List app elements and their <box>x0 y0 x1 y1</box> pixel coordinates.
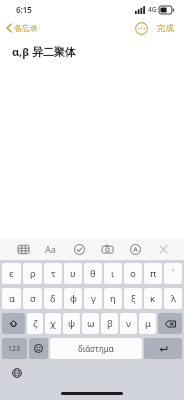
staticText: Aa <box>45 243 56 255</box>
button[interactable]: Close <box>154 240 172 258</box>
button[interactable]: χ <box>45 313 61 334</box>
staticText: ε <box>9 267 14 280</box>
staticText: 123 <box>8 344 21 354</box>
button[interactable]: Table <box>14 240 32 258</box>
button[interactable]: ρ <box>23 263 42 284</box>
staticText: α <box>9 292 15 305</box>
staticText: τ <box>51 267 56 280</box>
button[interactable]: Shift <box>2 313 25 334</box>
button[interactable]: α <box>2 288 21 309</box>
button[interactable]: ζ <box>27 313 43 334</box>
staticText: φ <box>70 292 77 305</box>
staticText: υ <box>70 267 76 280</box>
button[interactable]: Markup <box>126 240 144 258</box>
button[interactable]: ω <box>82 313 99 334</box>
staticText: 完成 <box>157 23 174 34</box>
staticText: 4G <box>148 5 157 14</box>
staticText: ξ <box>131 292 136 305</box>
button[interactable]: ν <box>120 313 137 334</box>
staticText: δ <box>50 292 56 305</box>
button[interactable]: Aa <box>41 239 60 259</box>
button[interactable]: π <box>144 263 162 284</box>
button[interactable]: φ <box>64 288 82 309</box>
button[interactable]: 123 <box>2 338 27 359</box>
staticText: ψ <box>68 317 76 330</box>
staticText: ι <box>111 267 115 280</box>
staticText: ρ <box>30 267 36 280</box>
staticText: θ <box>90 267 96 280</box>
staticText: ΄ <box>172 267 175 280</box>
staticText: ν <box>126 317 131 330</box>
staticText: ω <box>87 317 95 330</box>
button[interactable]: 备忘录 <box>0 20 44 36</box>
staticText: ζ <box>33 317 38 330</box>
button[interactable]: σ <box>23 288 42 309</box>
staticText: χ <box>50 317 56 330</box>
button[interactable]: λ <box>164 288 182 309</box>
staticText: 备忘录 <box>14 23 38 33</box>
button[interactable]: Return <box>144 338 182 359</box>
staticText: μ <box>145 317 151 330</box>
staticText: διάστημα <box>78 343 114 354</box>
button[interactable]: η <box>104 288 122 309</box>
staticText: γ <box>91 292 96 305</box>
button[interactable]: β <box>101 313 118 334</box>
button[interactable]: ε <box>2 263 21 284</box>
button[interactable]: ΄ <box>164 263 182 284</box>
button[interactable]: Backspace <box>158 313 182 334</box>
button[interactable]: ξ <box>124 288 142 309</box>
staticText: α,β 异二聚体 <box>12 44 76 59</box>
staticText: β <box>107 317 113 330</box>
button[interactable]: Emoji <box>29 338 48 359</box>
button[interactable]: διάστημα <box>50 338 142 359</box>
button[interactable]: ι <box>104 263 122 284</box>
staticText: η <box>110 292 116 305</box>
button[interactable]: Checklist <box>70 240 88 258</box>
button[interactable]: ψ <box>63 313 80 334</box>
button[interactable]: δ <box>44 288 62 309</box>
button[interactable]: μ <box>139 313 156 334</box>
button[interactable]: ο <box>124 263 142 284</box>
button[interactable]: κ <box>144 288 162 309</box>
staticText: π <box>150 267 157 280</box>
staticText: 6:15 <box>16 4 32 15</box>
staticText: σ <box>30 292 36 305</box>
button[interactable]: τ <box>44 263 62 284</box>
button[interactable]: More options <box>135 22 148 35</box>
button[interactable]: 完成 <box>155 20 176 37</box>
button[interactable]: Camera <box>98 240 116 258</box>
button[interactable]: θ <box>84 263 102 284</box>
staticText: κ <box>150 292 156 305</box>
button[interactable]: Change keyboard <box>10 366 24 380</box>
button[interactable]: υ <box>64 263 82 284</box>
staticText: λ <box>171 292 176 305</box>
staticText: ο <box>130 267 136 280</box>
button[interactable]: γ <box>84 288 102 309</box>
